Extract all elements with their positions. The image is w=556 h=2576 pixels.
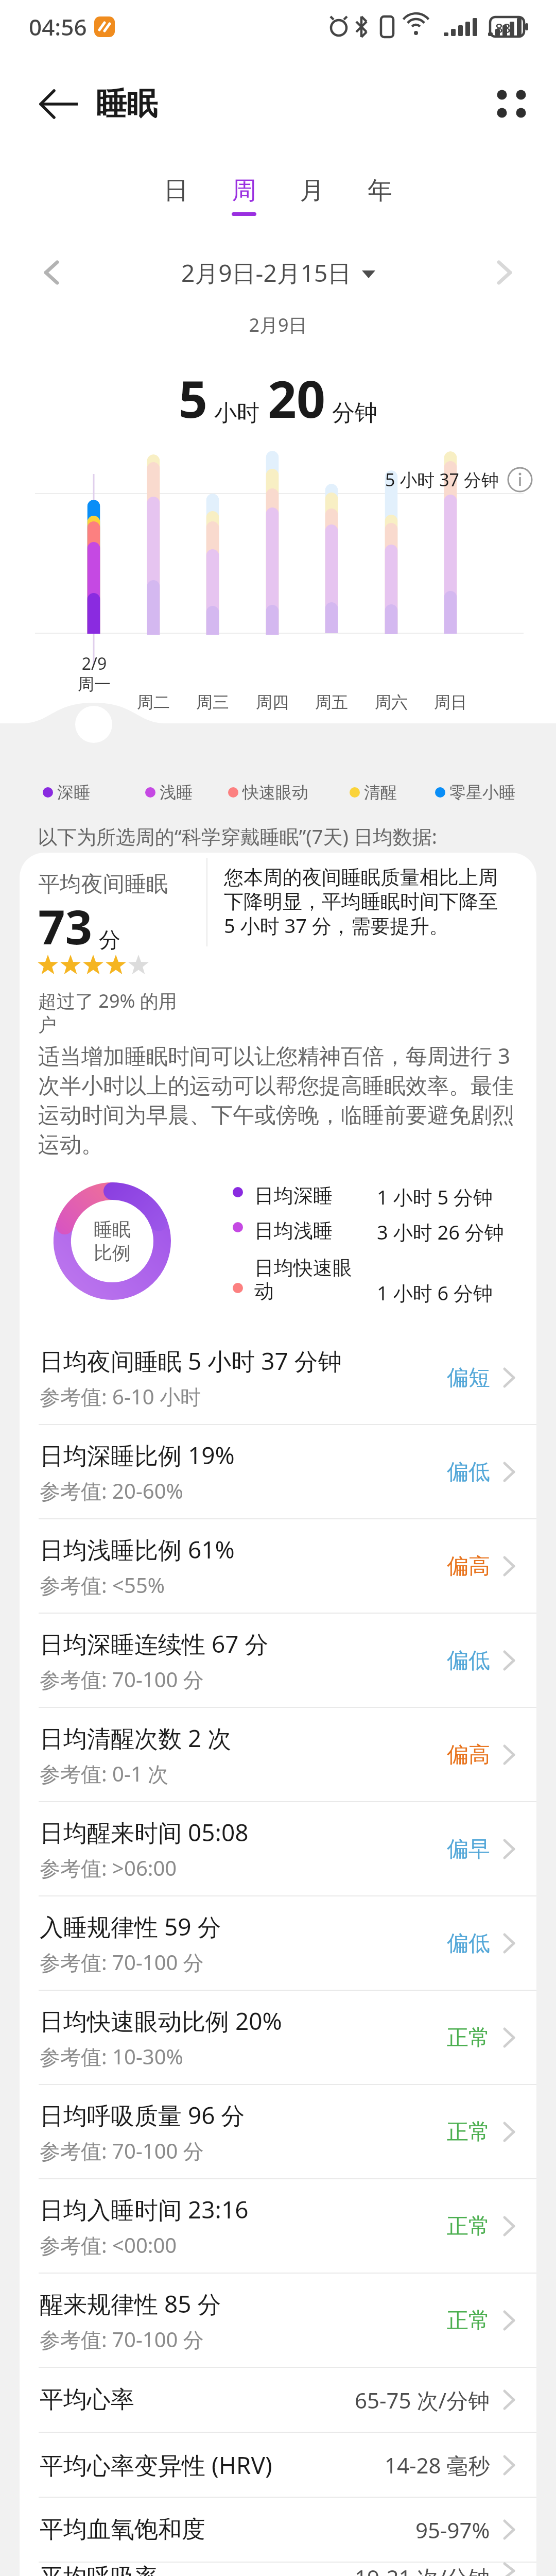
- staticText: 2月9日: [0, 312, 556, 337]
- button[interactable]: 日均呼吸质量 96 分: [20, 2085, 536, 2178]
- staticText: 日均快速眼动比例 20%: [40, 2005, 282, 2037]
- button[interactable]: 日均清醒次数 2 次: [20, 1708, 536, 1801]
- staticText: 日: [164, 175, 188, 206]
- staticText: 日均入睡时间 23:16: [40, 2193, 249, 2226]
- button[interactable]: 平均心率变异性 (HRV): [20, 2433, 536, 2497]
- button[interactable]: 月: [291, 175, 333, 216]
- button[interactable]: Info: [507, 467, 533, 493]
- staticText: 偏早: [447, 1836, 490, 1863]
- staticText: 偏低: [447, 1459, 490, 1486]
- button[interactable]: 日均快速眼动比例 20%: [20, 1991, 536, 2084]
- button[interactable]: 日均醒来时间 05:08: [20, 1802, 536, 1895]
- staticText: 零星小睡: [449, 782, 515, 803]
- staticText: 95-97%: [415, 2515, 490, 2545]
- button[interactable]: 日均深睡比例 19%: [20, 1425, 536, 1518]
- staticText: 清醒: [364, 782, 397, 803]
- staticText: 73: [38, 894, 93, 958]
- staticText: 正常: [447, 2119, 490, 2146]
- staticText: 日均深睡: [254, 1183, 333, 1208]
- staticText: 1 小时 5 分钟: [377, 1183, 493, 1210]
- button[interactable]: 日均深睡连续性 67 分: [20, 1614, 536, 1707]
- staticText: 睡眠: [96, 84, 158, 124]
- staticText: 参考值: 70-100 分: [40, 2325, 204, 2353]
- staticText: 1 小时 6 分钟: [377, 1279, 493, 1306]
- button[interactable]: 日均浅睡比例 61%: [20, 1519, 536, 1613]
- button[interactable]: 2月9日-2月15日: [181, 257, 375, 289]
- staticText: 04:56: [29, 11, 87, 42]
- button[interactable]: 日均入睡时间 23:16: [20, 2179, 536, 2273]
- staticText: 偏低: [447, 1930, 490, 1957]
- staticText: 参考值: 6-10 小时: [40, 1382, 201, 1411]
- button[interactable]: Next week: [479, 247, 530, 298]
- staticText: 5: [179, 364, 208, 432]
- staticText: 19-21 次/分钟: [355, 2563, 490, 2576]
- staticText: 参考值: 70-100 分: [40, 1948, 204, 1976]
- staticText: 偏短: [447, 1364, 490, 1392]
- staticText: 平均血氧饱和度: [40, 2515, 205, 2545]
- staticText: 周日: [426, 692, 475, 713]
- button[interactable]: 周: [223, 175, 265, 216]
- staticText: 3 小时 26 分钟: [377, 1218, 504, 1245]
- staticText: 平均心率: [40, 2385, 134, 2415]
- staticText: 分: [99, 927, 120, 954]
- staticText: 入睡规律性 59 分: [40, 1910, 221, 1943]
- staticText: 日均醒来时间 05:08: [40, 1816, 249, 1849]
- staticText: 周: [232, 175, 256, 206]
- staticText: 超过了 29% 的用户: [38, 988, 193, 1037]
- button[interactable]: Previous week: [26, 247, 77, 298]
- button[interactable]: 平均呼吸率: [20, 2563, 536, 2576]
- staticText: 分钟: [332, 399, 377, 427]
- staticText: 参考值: <00:00: [40, 2231, 177, 2259]
- staticText: 2/9: [69, 652, 119, 675]
- staticText: 您本周的夜间睡眠质量相比上周下降明显，平均睡眠时间下降至 5 小时 37 分，需…: [224, 865, 510, 939]
- staticText: 周六: [367, 692, 416, 713]
- staticText: 平均夜间睡眠: [38, 871, 168, 898]
- staticText: 参考值: 20-60%: [40, 1477, 183, 1505]
- staticText: 偏高: [447, 1553, 490, 1580]
- staticText: 醒来规律性 85 分: [40, 2287, 221, 2320]
- staticText: 平均呼吸率: [40, 2563, 158, 2576]
- staticText: 2月9日-2月15日: [181, 257, 352, 289]
- staticText: 正常: [447, 2307, 490, 2334]
- staticText: 日均浅睡比例 61%: [40, 1533, 235, 1566]
- staticText: 周一: [69, 674, 119, 694]
- button[interactable]: 日均夜间睡眠 5 小时 37 分钟: [20, 1331, 536, 1424]
- staticText: 日均浅睡: [254, 1218, 333, 1243]
- button[interactable]: 入睡规律性 59 分: [20, 1896, 536, 1990]
- staticText: 参考值: 10-30%: [40, 2042, 183, 2071]
- staticText: 年: [368, 175, 392, 206]
- staticText: 偏低: [447, 1647, 490, 1674]
- staticText: 以下为所选周的“科学穿戴睡眠”(7天) 日均数据:: [38, 823, 437, 850]
- staticText: 周二: [129, 692, 178, 713]
- staticText: 正常: [447, 2024, 490, 2052]
- staticText: 日均深睡连续性 67 分: [40, 1628, 269, 1660]
- staticText: 88: [495, 19, 511, 37]
- staticText: 偏高: [447, 1741, 490, 1769]
- button[interactable]: 平均血氧饱和度: [20, 2498, 536, 2562]
- staticText: 14-28 毫秒: [385, 2450, 490, 2480]
- staticText: 月: [300, 175, 324, 206]
- staticText: 深睡: [57, 782, 90, 803]
- button[interactable]: 日: [155, 175, 197, 216]
- button[interactable]: 年: [359, 175, 401, 216]
- staticText: 周三: [188, 692, 237, 713]
- staticText: 浅睡: [160, 782, 193, 803]
- staticText: 参考值: 70-100 分: [40, 1665, 204, 1693]
- staticText: 5 小时 37 分钟: [385, 468, 499, 492]
- staticText: 日均呼吸质量 96 分: [40, 2099, 245, 2131]
- staticText: 周五: [307, 692, 356, 713]
- staticText: 20: [268, 364, 326, 432]
- staticText: 65-75 次/分钟: [355, 2385, 490, 2415]
- staticText: 小时: [214, 399, 259, 427]
- staticText: 平均心率变异性 (HRV): [40, 2449, 272, 2481]
- button[interactable]: More options: [486, 78, 537, 130]
- staticText: 周四: [248, 692, 297, 713]
- staticText: 睡眠: [94, 1218, 131, 1241]
- staticText: 参考值: 0-1 次: [40, 1759, 169, 1788]
- button[interactable]: Back: [30, 77, 88, 131]
- button[interactable]: 平均心率: [20, 2368, 536, 2432]
- button[interactable]: 醒来规律性 85 分: [20, 2274, 536, 2367]
- staticText: 比例: [94, 1241, 131, 1264]
- staticText: 适当增加睡眠时间可以让您精神百倍，每周进行 3 次半小时以上的运动可以帮您提高睡…: [38, 1041, 519, 1158]
- staticText: 参考值: 70-100 分: [40, 2137, 204, 2165]
